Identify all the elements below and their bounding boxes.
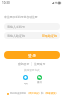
staticText: | [31,62,33,66]
staticText: QQ [24,81,28,84]
staticText: 和 [41,92,44,95]
button[interactable]: 《隐私政策》 [44,92,58,95]
button[interactable]: Agree to terms [7,93,9,95]
staticText: 登 录 [28,53,36,58]
staticText: 微信 [37,81,42,84]
button[interactable]: 请输入手机号 [4,23,60,30]
staticText: 其他登录方式 [24,68,40,71]
button[interactable]: 密码登录 [18,62,30,66]
staticText: 10:30 [2,1,10,5]
button[interactable]: QQ login [23,75,28,84]
staticText: 获取验证码 [42,34,57,38]
button[interactable]: WeChat login [37,75,42,84]
button[interactable]: 注册账号 [34,62,46,66]
staticText: 我已阅读并同意 [10,92,27,95]
button[interactable]: 《用户协议》 [27,92,41,95]
button[interactable]: 请输入验证码 [4,32,60,39]
staticText: 请输入验证码 [7,34,25,38]
staticText: 未注册的手机号将自动注册 [4,15,38,19]
staticText: 请输入手机号 [7,25,25,29]
button[interactable]: 登 录 [4,51,60,59]
